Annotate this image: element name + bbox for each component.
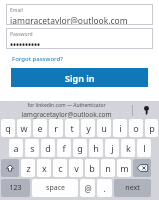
staticText: a [13, 142, 19, 154]
staticText: Email [10, 7, 23, 14]
button[interactable]: i [113, 119, 127, 137]
staticText: space [46, 183, 65, 193]
staticText: p [149, 122, 155, 134]
button[interactable]: a [9, 139, 23, 157]
button[interactable]: s [25, 139, 39, 157]
staticText: iamgracetaylor@outlook.com [21, 110, 112, 119]
button[interactable]: x [37, 159, 51, 177]
button[interactable]: v [69, 159, 83, 177]
button[interactable]: d [41, 139, 55, 157]
button[interactable]: c [53, 159, 67, 177]
staticText: w [20, 122, 28, 134]
staticText: t [70, 122, 74, 134]
staticText: j [111, 142, 114, 154]
staticText: r [54, 122, 58, 134]
button[interactable]: @ [80, 179, 95, 197]
button[interactable]: r [49, 119, 63, 137]
staticText: c [58, 162, 63, 174]
staticText: g [77, 142, 83, 154]
staticText: o [133, 122, 139, 134]
button[interactable]: space [32, 179, 78, 197]
staticText: n [105, 162, 111, 174]
staticText: u [101, 122, 107, 134]
staticText: h [93, 142, 99, 154]
button[interactable]: t [65, 119, 79, 137]
staticText: k [126, 142, 131, 154]
staticText: e [37, 122, 43, 134]
button[interactable]: for linkedin.com — Authenticator [0, 102, 132, 119]
staticText: f [62, 142, 66, 154]
button[interactable]: o [129, 119, 143, 137]
button[interactable]: y [81, 119, 95, 137]
button[interactable]: w [17, 119, 31, 137]
button[interactable]: Sign in [11, 68, 148, 87]
staticText: 123 [9, 183, 22, 193]
staticText: . [103, 183, 106, 194]
staticText: b [89, 162, 95, 174]
staticText: •••••••••• [10, 39, 41, 49]
button[interactable]: z [21, 159, 35, 177]
button[interactable]: Forgot password? [12, 55, 63, 63]
button[interactable]: p [145, 119, 158, 137]
button[interactable]: Email [6, 4, 153, 25]
button[interactable]: h [89, 139, 103, 157]
button[interactable]: f [57, 139, 71, 157]
staticText: v [74, 162, 79, 174]
button[interactable]: . [97, 179, 112, 197]
button[interactable]: Password [6, 28, 153, 49]
button[interactable]: u [97, 119, 111, 137]
button[interactable]: j [105, 139, 119, 157]
staticText: @ [84, 183, 92, 194]
staticText: next [125, 183, 140, 193]
staticText: i [119, 122, 122, 134]
staticText: Sign in [65, 72, 95, 84]
staticText: iamgracetaylor@outlook.com [10, 15, 128, 25]
button[interactable]: Backspace [133, 159, 151, 177]
staticText: z [26, 162, 31, 174]
staticText: Password [10, 31, 33, 38]
button[interactable]: k [121, 139, 135, 157]
staticText: s [30, 142, 35, 154]
staticText: x [42, 162, 47, 174]
button[interactable]: Shift [1, 159, 19, 177]
button[interactable]: next [114, 179, 151, 197]
button[interactable]: b [85, 159, 99, 177]
staticText: y [86, 122, 91, 134]
staticText: d [45, 142, 51, 154]
staticText: m [120, 162, 129, 174]
staticText: l [143, 142, 146, 154]
staticText: q [5, 122, 11, 134]
button[interactable]: n [101, 159, 115, 177]
staticText: Forgot password? [12, 55, 63, 63]
button[interactable]: m [117, 159, 131, 177]
button[interactable]: Passwords [133, 101, 159, 119]
button[interactable]: g [73, 139, 87, 157]
button[interactable]: 123 [1, 179, 30, 197]
button[interactable]: q [1, 119, 15, 137]
button[interactable]: l [137, 139, 151, 157]
staticText: for linkedin.com — Authenticator [27, 102, 106, 109]
button[interactable]: e [33, 119, 47, 137]
